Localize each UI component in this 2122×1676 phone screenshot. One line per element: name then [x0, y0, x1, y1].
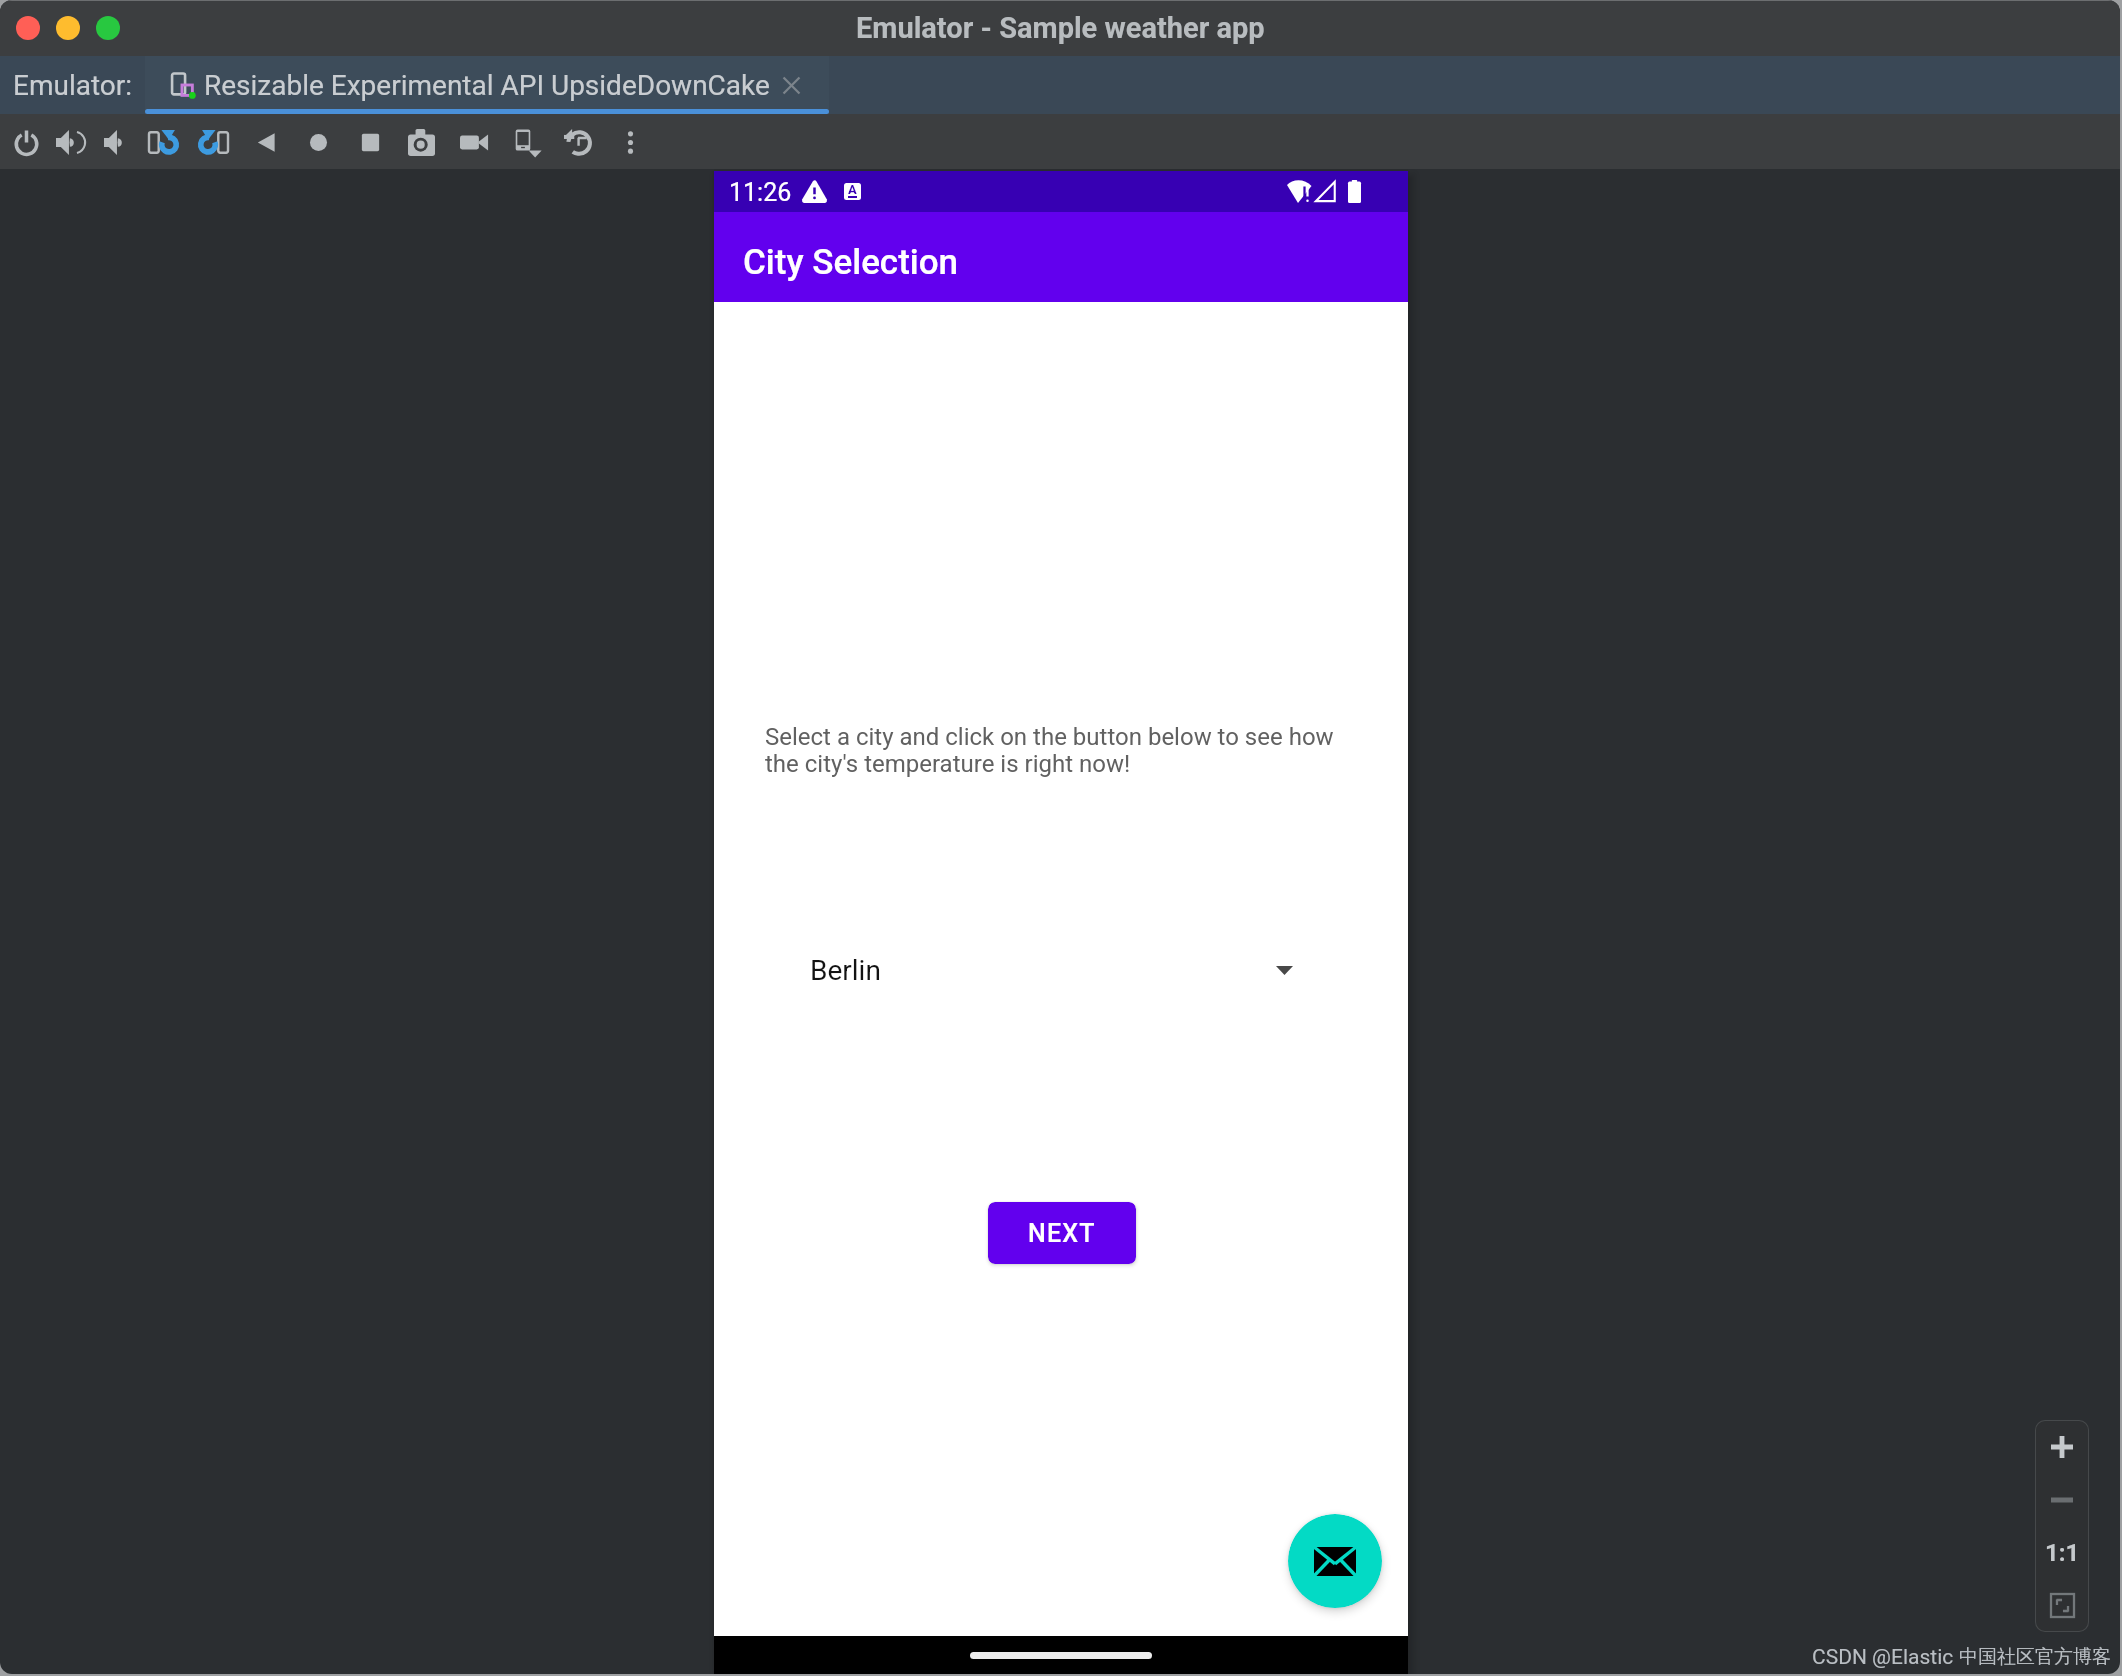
button[interactable]: Rotate right	[193, 121, 235, 163]
button[interactable]: Send email	[1288, 1514, 1382, 1608]
button[interactable]: Resizable Experimental API UpsideDownCak…	[170, 56, 802, 114]
button[interactable]: Close window	[16, 16, 40, 40]
button[interactable]: Fold device	[505, 121, 547, 163]
staticText: Select a city and click on the button be…	[765, 723, 1341, 778]
button[interactable]: Actual size	[2035, 1526, 2089, 1579]
button[interactable]: Minimize window	[56, 16, 80, 40]
staticText: NEXT	[1028, 1219, 1096, 1248]
staticText: A	[848, 183, 857, 197]
button[interactable]: Back	[245, 121, 287, 163]
staticText: CSDN @Elastic	[1812, 1645, 1959, 1670]
staticText: City Selection	[743, 242, 959, 283]
button[interactable]: More options	[609, 121, 651, 163]
button[interactable]: NEXT	[988, 1202, 1136, 1264]
button[interactable]: Screenshot	[400, 121, 442, 163]
staticText: Emulator:	[13, 69, 133, 102]
staticText: 中国社区官方博客	[1959, 1645, 2111, 1669]
button[interactable]: Zoom out	[2035, 1473, 2089, 1526]
button[interactable]: Close tab	[781, 75, 802, 96]
button[interactable]: Overview	[349, 121, 391, 163]
button[interactable]: Power	[5, 121, 47, 163]
button[interactable]: Zoom in	[2035, 1420, 2089, 1473]
staticText: 1:1	[2045, 1539, 2080, 1567]
button[interactable]: Record screen	[452, 121, 494, 163]
staticText: Emulator - Sample weather app	[856, 11, 1265, 45]
button[interactable]: Volume down	[96, 121, 138, 163]
staticText: 11:26	[729, 178, 792, 207]
button[interactable]: Rotate left	[141, 121, 183, 163]
button[interactable]: Home	[297, 121, 339, 163]
button[interactable]: Volume up	[48, 121, 90, 163]
staticText: Resizable Experimental API UpsideDownCak…	[204, 69, 770, 102]
button[interactable]: Fit to screen	[2035, 1579, 2089, 1632]
button[interactable]: Rotate back	[556, 121, 598, 163]
staticText: Berlin	[810, 954, 881, 987]
button[interactable]: Berlin	[810, 934, 1293, 1006]
button[interactable]: Maximize window	[96, 16, 120, 40]
